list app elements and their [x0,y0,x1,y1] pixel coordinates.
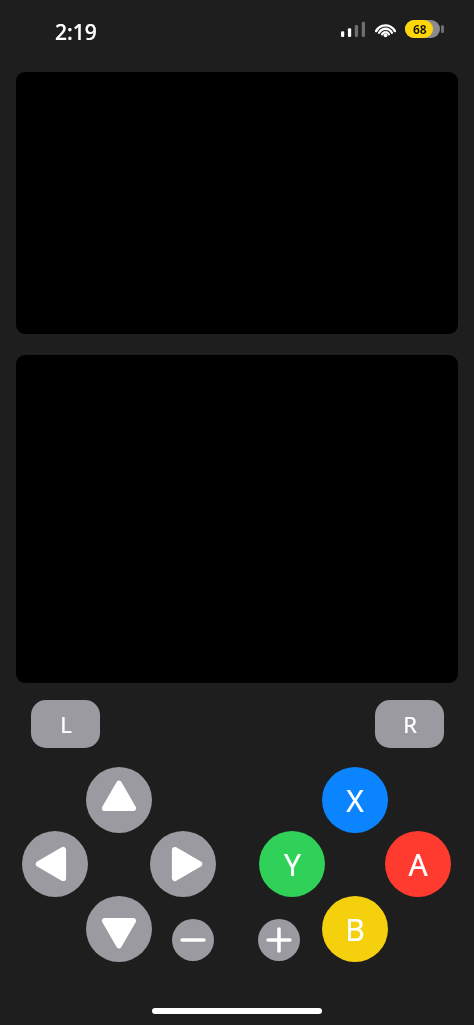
button[interactable]: D-pad left [22,831,88,897]
button[interactable]: A [385,831,451,897]
button[interactable]: D-pad down [86,896,152,962]
staticText: L [60,709,72,739]
button[interactable]: D-pad up [86,767,152,833]
button[interactable]: Y [259,831,325,897]
button[interactable]: D-pad right [150,831,216,897]
staticText: R [403,709,417,739]
staticText: 68 [413,21,427,37]
button[interactable]: Start [258,919,300,961]
button[interactable]: L [31,700,100,748]
staticText: Y [284,844,301,885]
staticText: X [346,780,364,821]
button[interactable]: B [322,896,388,962]
staticText: B [345,909,365,950]
button[interactable]: X [322,767,388,833]
staticText: 2:19 [55,18,97,47]
staticText: A [408,844,428,885]
button[interactable]: R [375,700,444,748]
button[interactable]: Select [172,919,214,961]
